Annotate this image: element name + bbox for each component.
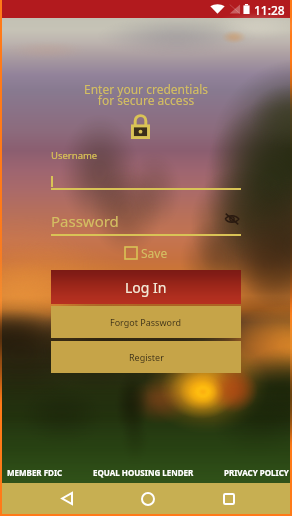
button[interactable]: Back (47, 483, 87, 514)
staticText: Log In (125, 278, 167, 297)
staticText: Username (51, 149, 98, 162)
staticText: 11:28 (254, 2, 285, 18)
button[interactable]: Forgot Password (51, 306, 241, 338)
staticText: Forgot Password (110, 316, 182, 328)
button[interactable]: EQUAL HOUSING LENDER (93, 467, 194, 478)
staticText: Enter your credentials for secure access (2, 81, 290, 109)
button[interactable]: Register (51, 341, 241, 373)
button[interactable]: PRIVACY POLICY (224, 467, 289, 478)
button[interactable]: Show password (223, 210, 241, 228)
button[interactable]: MEMBER FDIC (7, 467, 63, 478)
button[interactable]: Home (128, 483, 168, 514)
button[interactable]: Username (51, 149, 241, 190)
staticText: Password (51, 211, 119, 231)
button[interactable]: Save (125, 245, 168, 261)
staticText: Save (141, 245, 168, 261)
button[interactable]: Log In (51, 270, 241, 304)
staticText: Register (129, 351, 164, 363)
button[interactable]: Password (51, 211, 241, 236)
button[interactable]: Recent apps (209, 483, 249, 514)
